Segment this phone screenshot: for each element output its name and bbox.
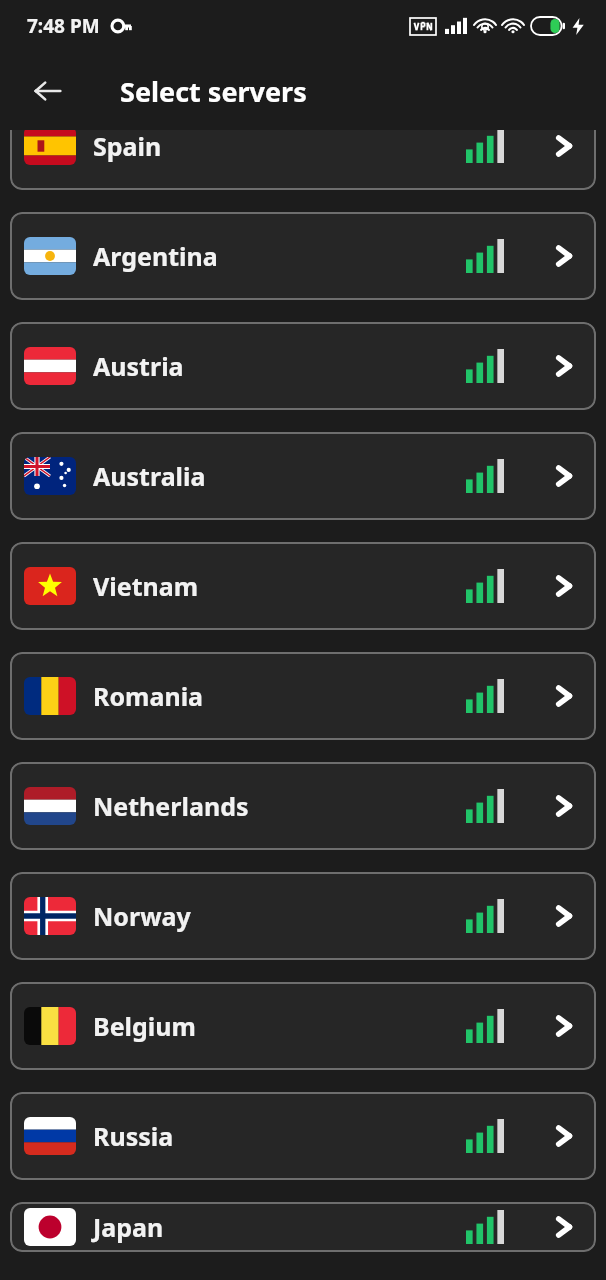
staticText: Romania: [93, 679, 204, 713]
button[interactable]: Open Romania servers: [540, 673, 586, 719]
staticText: Netherlands: [93, 789, 249, 823]
button[interactable]: Open Netherlands servers: [540, 783, 586, 829]
staticText: Russia: [93, 1119, 174, 1153]
button[interactable]: Open Russia servers: [540, 1113, 586, 1159]
button[interactable]: Open Spain servers: [540, 130, 586, 169]
button[interactable]: Japan: [10, 1202, 596, 1252]
button[interactable]: Netherlands: [10, 762, 596, 850]
staticText: Argentina: [93, 239, 218, 273]
staticText: Select servers: [120, 73, 307, 110]
button[interactable]: Romania: [10, 652, 596, 740]
staticText: Austria: [93, 349, 184, 383]
button[interactable]: Australia: [10, 432, 596, 520]
staticText: Vietnam: [93, 569, 199, 603]
staticText: Spain: [93, 130, 162, 163]
staticText: 7:48 PM: [27, 13, 100, 39]
button[interactable]: Open Norway servers: [540, 893, 586, 939]
button[interactable]: Russia: [10, 1092, 596, 1180]
button[interactable]: Vietnam: [10, 542, 596, 630]
button[interactable]: Open Austria servers: [540, 343, 586, 389]
button[interactable]: Argentina: [10, 212, 596, 300]
button[interactable]: Austria: [10, 322, 596, 410]
staticText: Japan: [93, 1210, 164, 1244]
button[interactable]: Open Australia servers: [540, 453, 586, 499]
button[interactable]: Open Belgium servers: [540, 1003, 586, 1049]
button[interactable]: Belgium: [10, 982, 596, 1070]
button[interactable]: Norway: [10, 872, 596, 960]
staticText: Australia: [93, 459, 206, 493]
button[interactable]: Open Vietnam servers: [540, 563, 586, 609]
staticText: Belgium: [93, 1009, 196, 1043]
button[interactable]: Open Japan servers: [540, 1204, 586, 1250]
button[interactable]: Back: [22, 65, 74, 117]
staticText: Norway: [93, 899, 191, 933]
button[interactable]: Spain: [10, 130, 596, 190]
button[interactable]: Open Argentina servers: [540, 233, 586, 279]
